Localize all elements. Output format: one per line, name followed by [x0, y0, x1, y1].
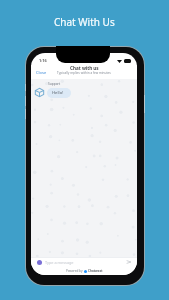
staticText: Chat with us: [70, 65, 99, 71]
button[interactable]: Close: [34, 68, 49, 77]
button[interactable]: Send: [126, 259, 132, 265]
button[interactable]: Emoji: [36, 259, 42, 265]
staticText: Hello!: [52, 90, 64, 96]
staticText: Support: [48, 82, 61, 86]
staticText: Chat With Us: [54, 15, 115, 29]
staticText: Powered by: [66, 269, 84, 273]
staticText: Type a message: [45, 260, 74, 265]
staticText: Chatwoot: [88, 269, 103, 273]
staticText: Typically replies within a few minutes: [57, 71, 111, 75]
staticText: 1:16: [39, 58, 47, 63]
staticText: Close: [36, 70, 47, 75]
